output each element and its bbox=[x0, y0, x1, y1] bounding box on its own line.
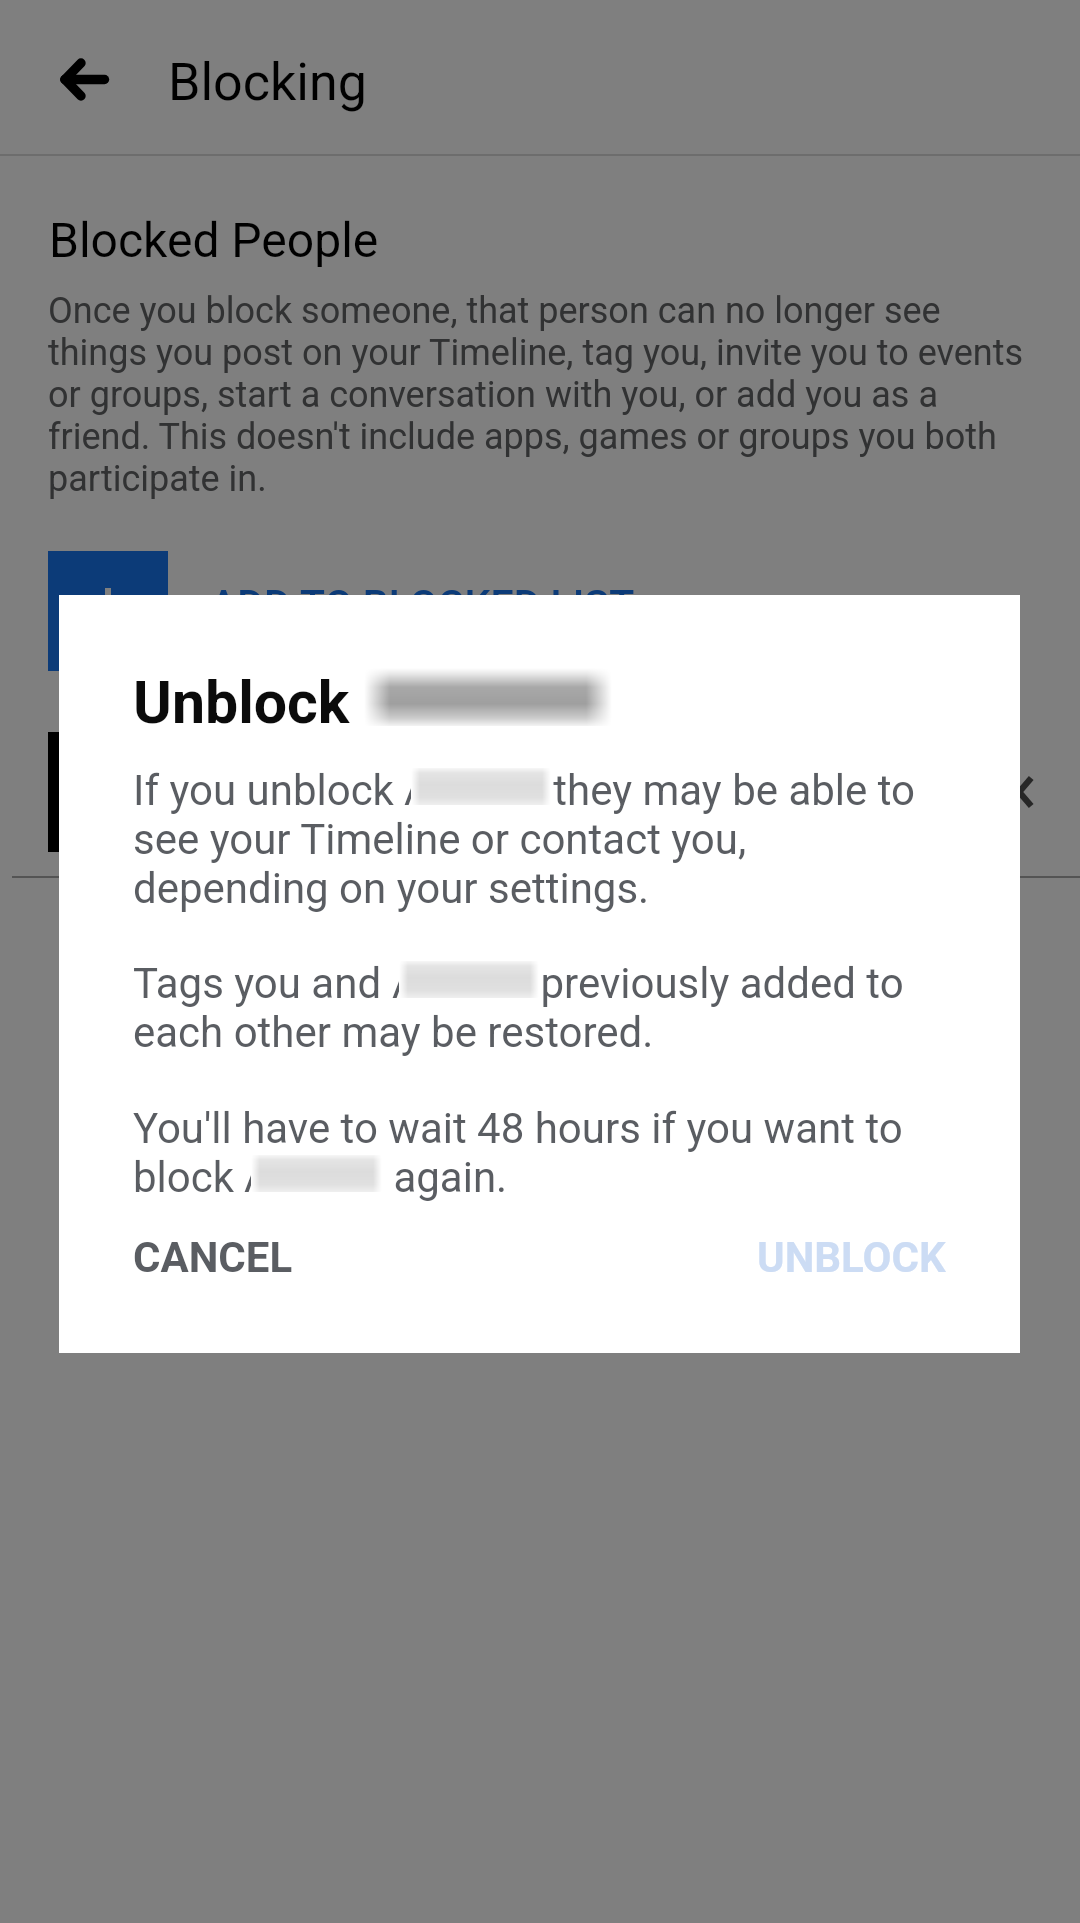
staticText: Blocked People bbox=[49, 212, 379, 268]
staticText: You'll have to wait 48 hours if you want… bbox=[133, 1104, 949, 1202]
staticText: A bbox=[392, 959, 420, 1008]
staticText: A bbox=[404, 766, 432, 815]
button[interactable]: CANCEL bbox=[107, 1211, 319, 1304]
button[interactable]: UNBLOCK bbox=[731, 1211, 972, 1304]
staticText: CANCEL bbox=[133, 1233, 293, 1282]
button[interactable]: ADD TO BLOCKED LIST bbox=[0, 530, 1080, 692]
staticText: Once you block someone, that person can … bbox=[48, 290, 1048, 500]
staticText: A bbox=[244, 1153, 272, 1202]
button[interactable]: Unblock bbox=[0, 707, 1080, 876]
staticText: If you unblock they may be able to see y… bbox=[133, 766, 949, 913]
staticText: UNBLOCK bbox=[757, 1233, 946, 1282]
staticText: ADD TO BLOCKED LIST bbox=[210, 581, 635, 629]
staticText: Unblock bbox=[133, 668, 612, 737]
staticText: Blocking bbox=[168, 52, 367, 113]
button[interactable]: Unblock bbox=[960, 732, 1080, 852]
staticText: Tags you and previously added to each ot… bbox=[133, 959, 949, 1057]
button[interactable]: Navigate up bbox=[24, 0, 144, 156]
